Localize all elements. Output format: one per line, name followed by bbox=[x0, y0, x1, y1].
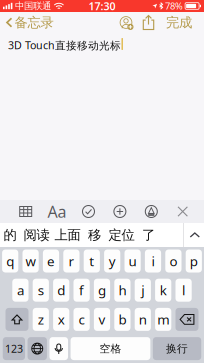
button[interactable]: i bbox=[145, 249, 161, 272]
button[interactable]: d bbox=[53, 279, 69, 302]
button[interactable] bbox=[28, 337, 47, 360]
staticText: 备忘录 bbox=[14, 14, 53, 31]
staticText: 完成 bbox=[166, 14, 192, 31]
staticText: 换行 bbox=[166, 342, 188, 355]
button[interactable]: 上面 bbox=[53, 223, 82, 247]
staticText: z bbox=[38, 310, 44, 328]
button[interactable]: t bbox=[84, 249, 100, 272]
button[interactable]: b bbox=[114, 308, 130, 331]
staticText: 3D Touch直接移动光标 bbox=[8, 38, 121, 52]
staticText: l bbox=[182, 281, 185, 299]
button[interactable] bbox=[49, 337, 68, 360]
staticText: h bbox=[118, 281, 126, 299]
button[interactable]: q bbox=[2, 249, 18, 272]
staticText: k bbox=[160, 281, 167, 299]
button[interactable] bbox=[175, 308, 198, 331]
button[interactable]: m bbox=[155, 308, 171, 331]
button[interactable]: x bbox=[53, 308, 69, 331]
button[interactable]: 定位 bbox=[107, 223, 136, 247]
staticText: 中国联通 bbox=[15, 0, 51, 12]
staticText: 移 bbox=[88, 227, 101, 243]
staticText: 78% bbox=[165, 0, 183, 12]
button[interactable]: Checklist bbox=[73, 200, 104, 223]
button[interactable]: Markup bbox=[136, 200, 167, 223]
button[interactable]: e bbox=[43, 249, 59, 272]
button[interactable]: Insert bbox=[104, 200, 136, 223]
button[interactable]: z bbox=[33, 308, 49, 331]
button[interactable]: h bbox=[114, 279, 130, 302]
staticText: t bbox=[89, 252, 94, 270]
staticText: 123 bbox=[5, 341, 23, 356]
button[interactable]: Share bbox=[137, 12, 160, 32]
button[interactable]: w bbox=[22, 249, 39, 272]
staticText: a bbox=[17, 281, 24, 299]
staticText: m bbox=[157, 310, 169, 328]
staticText: 17:30 bbox=[88, 0, 115, 13]
button[interactable]: p bbox=[186, 249, 202, 272]
button[interactable]: 换行 bbox=[153, 337, 201, 360]
button[interactable]: Close bbox=[167, 200, 198, 223]
button[interactable]: g bbox=[94, 279, 110, 302]
button[interactable]: f bbox=[73, 279, 90, 302]
staticText: Aa bbox=[48, 201, 67, 222]
staticText: o bbox=[169, 252, 177, 270]
button[interactable]: More candidates bbox=[186, 223, 204, 247]
button[interactable]: 移 bbox=[84, 223, 105, 247]
button[interactable]: y bbox=[104, 249, 120, 272]
staticText: q bbox=[6, 252, 14, 270]
button[interactable]: u bbox=[124, 249, 141, 272]
staticText: r bbox=[68, 252, 74, 270]
button[interactable]: o bbox=[165, 249, 181, 272]
staticText: b bbox=[118, 310, 126, 328]
staticText: c bbox=[79, 310, 85, 328]
staticText: y bbox=[109, 252, 116, 270]
button[interactable]: s bbox=[33, 279, 49, 302]
button[interactable]: l bbox=[175, 279, 192, 302]
button[interactable]: 了 bbox=[138, 223, 159, 247]
button[interactable]: k bbox=[155, 279, 171, 302]
button[interactable]: 阅读 bbox=[22, 223, 51, 247]
button[interactable]: 的 bbox=[0, 223, 20, 247]
staticText: u bbox=[129, 252, 137, 270]
button[interactable]: 123 bbox=[3, 337, 25, 360]
button[interactable]: Table bbox=[10, 200, 41, 223]
staticText: g bbox=[98, 281, 106, 299]
button[interactable]: j bbox=[135, 279, 151, 302]
button[interactable]: v bbox=[94, 308, 110, 331]
staticText: n bbox=[139, 310, 147, 328]
staticText: x bbox=[58, 310, 65, 328]
button[interactable]: Add People bbox=[115, 12, 137, 32]
staticText: d bbox=[57, 281, 65, 299]
staticText: w bbox=[26, 252, 36, 270]
button[interactable]: Aa bbox=[41, 200, 73, 223]
staticText: j bbox=[141, 281, 144, 299]
staticText: v bbox=[98, 310, 105, 328]
staticText: f bbox=[79, 281, 84, 299]
button[interactable]: 完成 bbox=[160, 12, 198, 32]
staticText: 定位 bbox=[108, 227, 134, 243]
staticText: p bbox=[190, 252, 198, 270]
staticText: e bbox=[47, 252, 55, 270]
staticText: 空格 bbox=[99, 342, 121, 355]
button[interactable]: 备忘录 bbox=[3, 12, 57, 32]
staticText: 了 bbox=[142, 227, 155, 243]
button[interactable] bbox=[5, 308, 28, 331]
button[interactable]: r bbox=[63, 249, 79, 272]
staticText: 阅读 bbox=[23, 227, 49, 243]
staticText: i bbox=[151, 252, 154, 270]
staticText: s bbox=[38, 281, 44, 299]
button[interactable]: a bbox=[12, 279, 28, 302]
staticText: 上面 bbox=[54, 227, 80, 243]
button[interactable]: 空格 bbox=[71, 337, 150, 360]
button[interactable]: n bbox=[135, 308, 151, 331]
staticText: 的 bbox=[3, 227, 16, 243]
button[interactable]: c bbox=[73, 308, 90, 331]
